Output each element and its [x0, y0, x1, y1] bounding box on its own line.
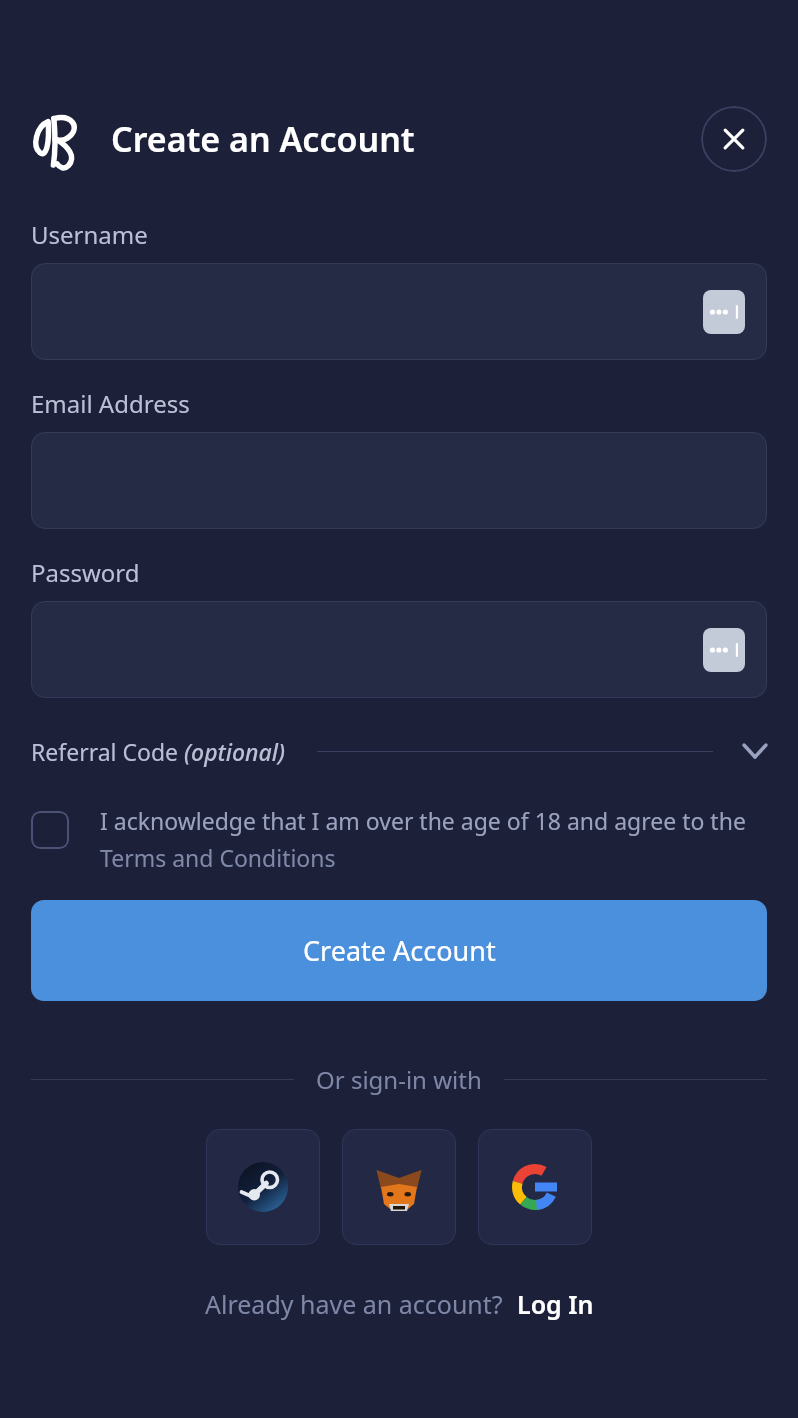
- staticText: Username: [31, 218, 148, 251]
- staticText: I acknowledge that I am over the age of …: [100, 805, 767, 874]
- staticText: Create Account: [303, 932, 496, 969]
- staticText: Already have an account?: [205, 1287, 503, 1321]
- staticText: Or sign-in with: [316, 1063, 482, 1096]
- button[interactable]: I acknowledge that I am over the age of …: [31, 805, 767, 874]
- button[interactable]: [31, 601, 767, 698]
- staticText: Password: [31, 556, 140, 589]
- button[interactable]: Log In: [517, 1287, 594, 1321]
- button[interactable]: Create Account: [31, 900, 767, 1001]
- button[interactable]: Sign in with Google: [478, 1129, 592, 1245]
- staticText: Log In: [517, 1287, 594, 1321]
- button[interactable]: [31, 263, 767, 360]
- button[interactable]: Sign in with Steam: [206, 1129, 320, 1245]
- button[interactable]: Sign in with MetaMask: [342, 1129, 456, 1245]
- staticText: Create an Account: [111, 116, 415, 162]
- button[interactable]: Referral Code (optional): [31, 729, 767, 773]
- staticText: Referral Code (optional): [31, 736, 285, 767]
- button[interactable]: Close: [701, 106, 767, 172]
- staticText: Email Address: [31, 387, 190, 420]
